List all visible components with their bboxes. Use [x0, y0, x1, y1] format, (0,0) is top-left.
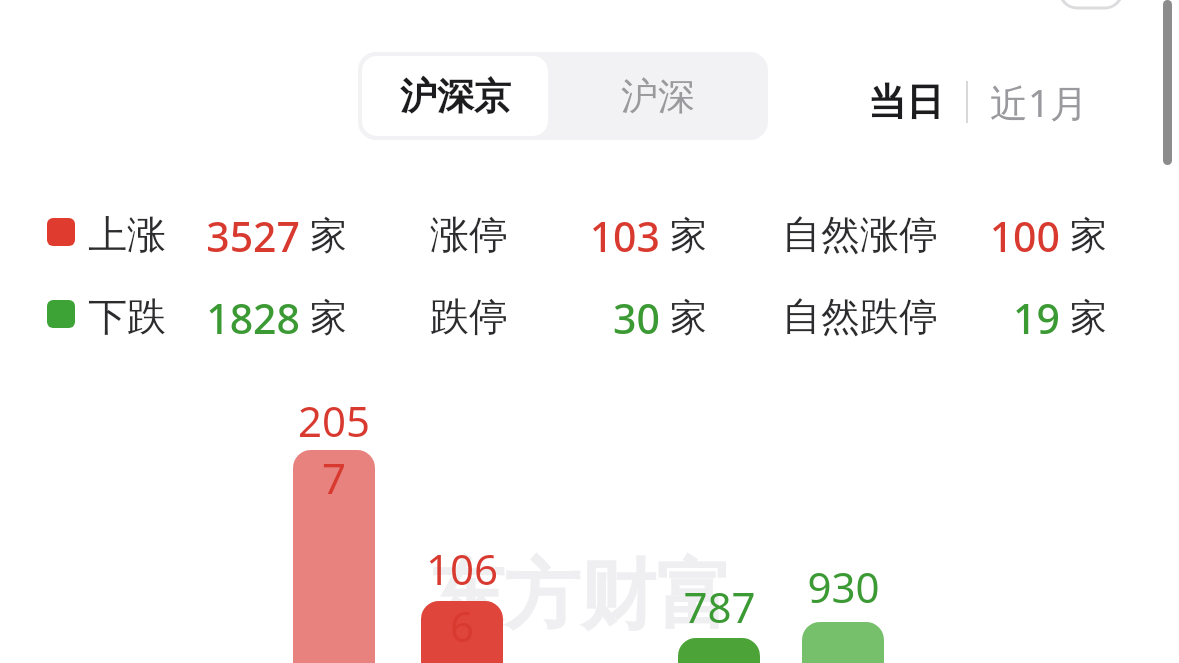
staticText: 家 — [670, 294, 707, 341]
staticText: 103 — [589, 208, 660, 264]
staticText: 家 — [1070, 294, 1107, 341]
staticText: 2057 — [293, 392, 375, 506]
button[interactable]: 2057 — [293, 450, 375, 663]
staticText: 930 — [807, 558, 880, 615]
staticText: 下跌 — [88, 292, 166, 341]
button[interactable]: 下跌 — [0, 288, 1179, 360]
staticText: 1066 — [421, 540, 503, 654]
button[interactable]: 沪深 — [552, 56, 764, 136]
staticText: 787 — [683, 578, 756, 635]
staticText: 家 — [670, 212, 707, 259]
staticText: 自然跌停 — [782, 292, 938, 341]
staticText: 100 — [989, 208, 1060, 264]
staticText: 当日 — [868, 78, 944, 126]
button[interactable]: 当日 — [862, 70, 950, 134]
staticText: 跌停 — [430, 292, 508, 341]
button[interactable]: 沪深京 — [362, 56, 548, 136]
staticText: 涨停 — [430, 210, 508, 259]
button[interactable]: 787 — [678, 638, 760, 663]
staticText: 沪深 — [621, 73, 695, 120]
button[interactable]: 近1月 — [984, 68, 1094, 136]
staticText: 1828 — [206, 290, 300, 346]
staticText: 19 — [1013, 290, 1060, 346]
staticText: 沪深京 — [400, 73, 511, 120]
staticText: 3527 — [206, 208, 300, 264]
staticText: 东方财富 — [428, 548, 732, 644]
button[interactable]: 930 — [802, 622, 884, 663]
staticText: 近1月 — [990, 76, 1088, 128]
staticText: 家 — [1070, 212, 1107, 259]
staticText: 上涨 — [88, 210, 166, 259]
staticText: 30 — [613, 290, 660, 346]
button[interactable]: 1066 — [421, 601, 503, 663]
staticText: 家 — [310, 294, 347, 341]
staticText: 家 — [310, 212, 347, 259]
staticText: 自然涨停 — [782, 210, 938, 259]
button[interactable]: 上涨 — [0, 206, 1179, 278]
